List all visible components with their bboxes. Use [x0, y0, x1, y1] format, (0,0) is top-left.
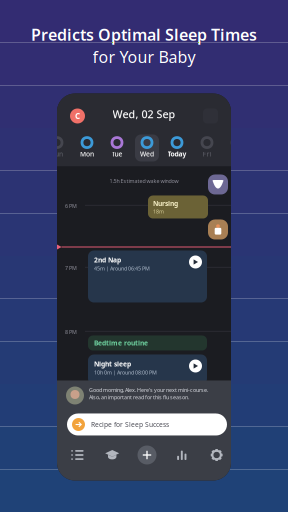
staticText: C	[75, 111, 80, 121]
button[interactable]: Today	[162, 134, 192, 161]
staticText: 10h 0m | Around 08:00 PM	[94, 369, 157, 376]
staticText: Fri	[202, 150, 211, 158]
staticText: Recipe for Sleep Success	[91, 420, 169, 429]
staticText: Mon	[80, 150, 94, 158]
button[interactable]: Log feeding	[208, 219, 228, 239]
staticText: 45m | Around 06:45 PM	[94, 265, 150, 272]
staticText: 1.5h Estimated wake window	[109, 177, 178, 185]
button[interactable]: Profile	[70, 108, 85, 123]
staticText: Tue	[111, 150, 122, 158]
staticText: Night sleep	[94, 359, 131, 368]
staticText: 6 PM	[65, 202, 77, 210]
staticText: Today	[167, 150, 186, 158]
button[interactable]: 2nd Nap	[88, 250, 207, 302]
button[interactable]: Recipe for Sleep Success	[67, 413, 227, 435]
button[interactable]: Start	[189, 255, 202, 268]
staticText: Wed, 02 Sep	[112, 107, 175, 121]
staticText: 18m	[153, 208, 164, 215]
button[interactable]: Settings	[199, 437, 234, 473]
staticText: Bedtime routine	[94, 339, 148, 347]
button[interactable]: Stats	[164, 437, 199, 473]
staticText: Good morning, Alex. Here's your next min…	[89, 386, 208, 401]
button[interactable]: Sun	[42, 134, 72, 161]
button[interactable]: Mon	[72, 134, 102, 161]
button[interactable]: Add entry	[130, 437, 164, 473]
staticText: 8 PM	[65, 328, 77, 336]
staticText: Sun	[51, 150, 63, 158]
staticText: Nursing	[153, 199, 178, 208]
button[interactable]: Log diaper	[208, 174, 228, 194]
button[interactable]: Wed	[132, 134, 162, 161]
button[interactable]: Timeline	[60, 437, 95, 473]
staticText: Wed	[140, 150, 154, 158]
button[interactable]: Start	[189, 359, 202, 372]
staticText: 7 PM	[65, 264, 77, 272]
button[interactable]: Night sleep	[88, 354, 207, 384]
button[interactable]: Sat	[222, 134, 252, 161]
staticText: 2nd Nap	[94, 255, 121, 264]
button[interactable]: Fri	[192, 134, 222, 161]
button[interactable]: Tue	[102, 134, 132, 161]
staticText: for Your Baby	[92, 46, 195, 67]
button[interactable]: Learn	[95, 437, 130, 473]
staticText: Predicts Optimal Sleep Times	[31, 24, 257, 45]
